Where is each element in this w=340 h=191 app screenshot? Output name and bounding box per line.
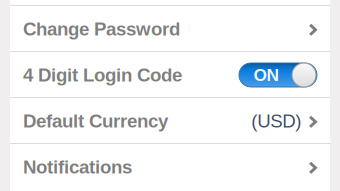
staticText: ON bbox=[253, 65, 279, 85]
staticText: Default Currency bbox=[23, 111, 168, 131]
staticText: 4 Digit Login Code bbox=[23, 65, 182, 85]
staticText: (USD) bbox=[251, 111, 301, 131]
button[interactable]: 4 Digit Login Code bbox=[10, 52, 330, 97]
staticText: Change Password bbox=[23, 19, 180, 39]
button[interactable]: Default Currency bbox=[10, 98, 330, 143]
button[interactable]: Notifications bbox=[10, 144, 330, 189]
button[interactable]: Change Password bbox=[10, 6, 330, 51]
staticText: Notifications bbox=[23, 157, 132, 177]
